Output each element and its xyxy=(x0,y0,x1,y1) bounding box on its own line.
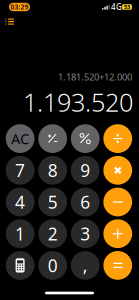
button[interactable]: Divide xyxy=(103,124,132,153)
button[interactable]: 9 xyxy=(71,156,100,185)
staticText: 1.181.520+12.000 xyxy=(58,71,132,83)
button[interactable]: Calculator mode xyxy=(6,251,34,280)
button[interactable]: 8 xyxy=(38,156,67,185)
button[interactable]: 7 xyxy=(6,156,34,185)
button[interactable]: 3 xyxy=(71,219,100,248)
staticText: 1.193.520 xyxy=(23,85,133,119)
button[interactable]: 4 xyxy=(6,188,34,216)
button[interactable]: AC xyxy=(6,124,34,153)
staticText: 5 xyxy=(48,190,58,213)
button[interactable]: , xyxy=(71,251,100,280)
staticText: 3 xyxy=(80,222,90,245)
staticText: 9 xyxy=(80,159,90,182)
button[interactable]: Minus xyxy=(103,188,132,216)
button[interactable]: 1 xyxy=(6,219,34,248)
staticText: 1 xyxy=(15,222,25,245)
button[interactable]: 0 xyxy=(38,251,67,280)
button[interactable]: Plus xyxy=(103,219,132,248)
button[interactable]: History xyxy=(2,14,17,29)
button[interactable]: 5 xyxy=(38,188,67,216)
staticText: , xyxy=(83,254,88,277)
button[interactable]: 6 xyxy=(71,188,100,216)
staticText: 0 xyxy=(48,254,58,277)
button[interactable]: Plus minus xyxy=(38,124,67,153)
staticText: AC xyxy=(11,129,29,148)
staticText: 4 xyxy=(15,190,25,213)
button[interactable]: Percent xyxy=(71,124,100,153)
button[interactable]: 2 xyxy=(38,219,67,248)
button[interactable]: Equals xyxy=(103,251,132,280)
staticText: 03:29 xyxy=(10,3,28,11)
button[interactable]: Multiply xyxy=(103,156,132,185)
staticText: 4G xyxy=(111,2,122,12)
staticText: 6 xyxy=(80,190,90,213)
staticText: 8 xyxy=(48,159,58,182)
staticText: 53 xyxy=(124,3,130,11)
staticText: 7 xyxy=(15,159,25,182)
staticText: 2 xyxy=(48,222,58,245)
